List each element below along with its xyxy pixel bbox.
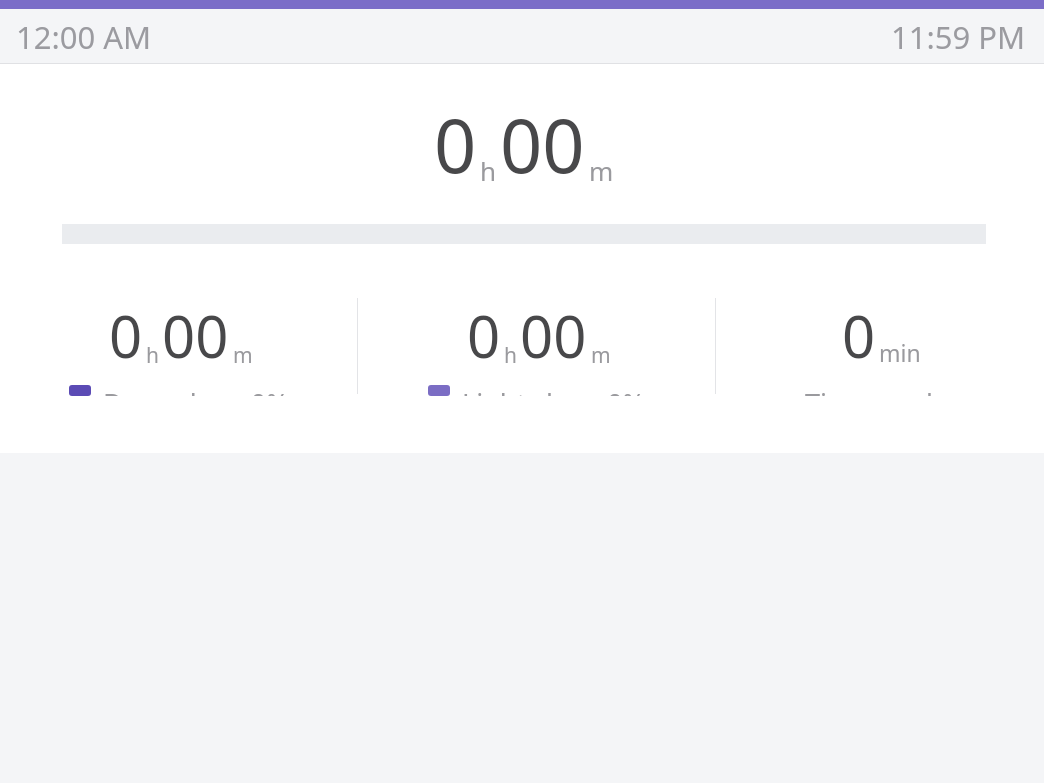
staticText: Time awake bbox=[805, 385, 956, 396]
staticText: 0 bbox=[842, 296, 876, 375]
staticText: 11:59 PM bbox=[891, 16, 1026, 58]
staticText: m bbox=[591, 341, 611, 370]
staticText: 0 bbox=[109, 296, 143, 375]
staticText: h bbox=[504, 341, 517, 370]
staticText: m bbox=[233, 341, 253, 370]
button[interactable]: 0 bbox=[0, 296, 357, 396]
button[interactable]: 0 bbox=[716, 296, 1044, 396]
staticText: 0 bbox=[434, 94, 477, 195]
staticText: 0 bbox=[467, 296, 501, 375]
staticText: Light sleep 0% bbox=[462, 385, 646, 396]
staticText: 00 bbox=[520, 296, 587, 375]
staticText: h bbox=[146, 341, 159, 370]
staticText: 00 bbox=[162, 296, 229, 375]
staticText: m bbox=[589, 153, 614, 188]
staticText: 00 bbox=[500, 94, 585, 195]
button[interactable]: 0 bbox=[358, 296, 715, 396]
staticText: Deep sleep 0% bbox=[103, 385, 289, 396]
staticText: min bbox=[879, 337, 921, 368]
staticText: 12:00 AM bbox=[16, 16, 152, 58]
staticText: h bbox=[480, 153, 497, 188]
